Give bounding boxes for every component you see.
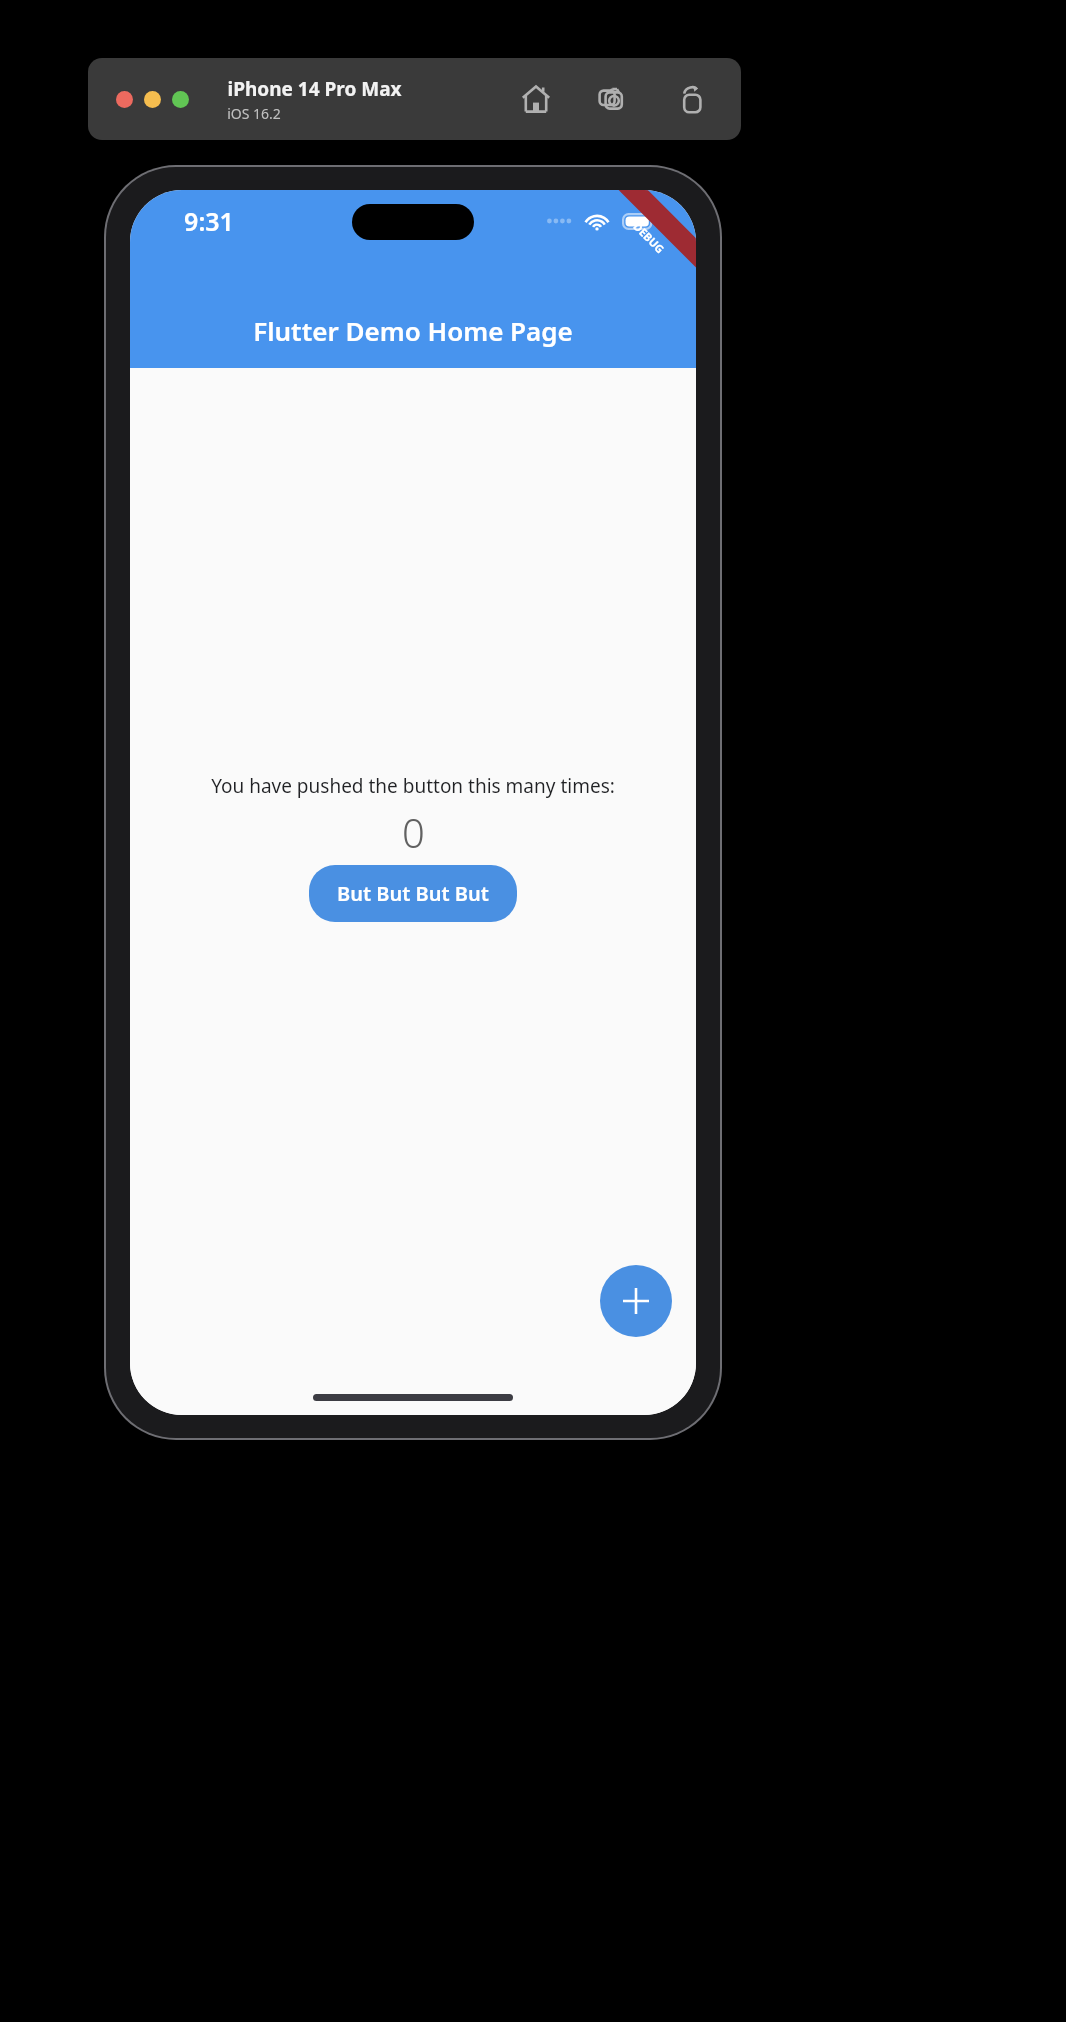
staticText: You have pushed the button this many tim…	[211, 773, 615, 799]
staticText: Flutter Demo Home Page	[253, 313, 573, 348]
staticText: But But But But	[337, 880, 489, 907]
button[interactable]	[116, 91, 133, 108]
button[interactable]	[144, 91, 161, 108]
staticText: iOS 16.2	[227, 104, 281, 123]
staticText: iPhone 14 Pro Max	[227, 76, 402, 102]
button[interactable]: But But But But	[309, 865, 517, 922]
button[interactable]: Increment	[600, 1265, 672, 1337]
staticText: 0	[402, 805, 425, 859]
staticText: 9:31	[184, 204, 234, 238]
button[interactable]: Screenshot	[591, 76, 637, 122]
staticText: DEBUG	[630, 219, 668, 256]
button[interactable]: Rotate	[669, 76, 715, 122]
button[interactable]	[172, 91, 189, 108]
button[interactable]: Home	[513, 76, 559, 122]
